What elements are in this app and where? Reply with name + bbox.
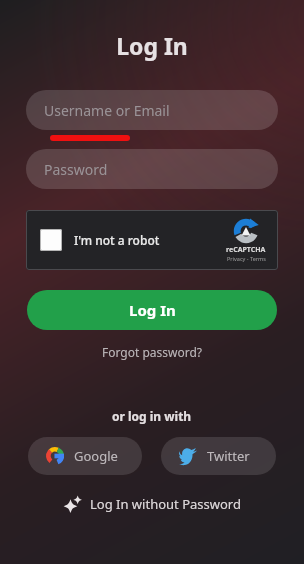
button[interactable]: Twitter (161, 437, 276, 475)
button[interactable]: Google (28, 437, 142, 475)
button[interactable]: Username or Email (26, 90, 278, 130)
staticText: Log In (116, 30, 188, 61)
button[interactable]: I'm not a robot checkbox (26, 210, 278, 270)
staticText: or log in with (112, 408, 192, 424)
staticText: Username or Email (44, 101, 170, 120)
button[interactable]: Forgot password? (94, 340, 211, 364)
other: I'm not a robot checkbox (40, 229, 62, 251)
staticText: Google (74, 447, 118, 465)
button[interactable]: Password (26, 149, 278, 189)
staticText: Log In without Password (90, 495, 241, 513)
staticText: Forgot password? (102, 344, 203, 360)
button[interactable]: Log In without Password (54, 491, 251, 517)
button[interactable]: Log In (27, 290, 277, 330)
staticText: Privacy - Terms (227, 255, 266, 262)
staticText: I'm not a robot (74, 232, 160, 248)
staticText: Log In (129, 300, 176, 320)
staticText: Twitter (207, 447, 250, 465)
staticText: reCAPTCHA (226, 245, 266, 255)
staticText: Password (44, 160, 108, 179)
